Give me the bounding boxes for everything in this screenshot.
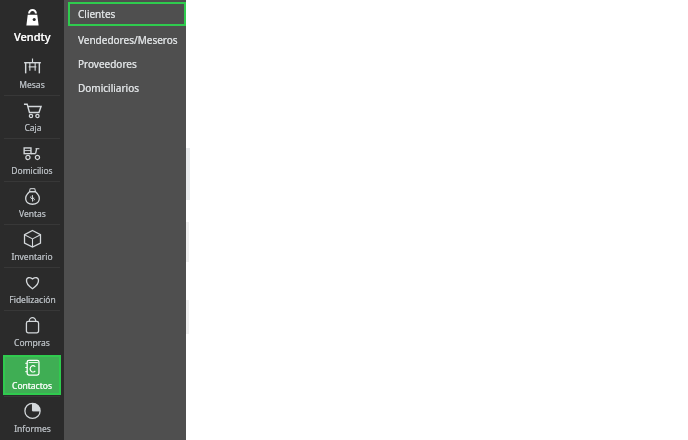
staticText: Domicilios [11, 165, 53, 177]
staticText: Vendty [14, 29, 51, 44]
staticText: Caja [24, 122, 42, 134]
staticText: Compras [14, 337, 50, 349]
button[interactable]: Contactos [3, 355, 61, 395]
button[interactable]: Fidelización [0, 267, 64, 310]
button[interactable]: Mesas [0, 52, 64, 95]
staticText: Vendedores/Meseros [78, 33, 178, 47]
staticText: Clientes [78, 7, 116, 21]
staticText: Ventas [19, 208, 46, 220]
staticText: Domiciliarios [78, 81, 139, 95]
button[interactable]: Clientes [68, 2, 186, 26]
button[interactable]: Domicilios [0, 138, 64, 181]
button[interactable]: Informes [0, 396, 64, 439]
staticText: Proveedores [78, 57, 137, 71]
staticText: Mesas [19, 79, 45, 91]
staticText: Contactos [12, 380, 52, 392]
button[interactable]: Domiciliarios [68, 76, 186, 100]
button[interactable]: Vendedores/Meseros [68, 28, 186, 52]
staticText: Fidelización [9, 294, 56, 306]
button[interactable]: Inventario [0, 224, 64, 267]
button[interactable]: Vendty [0, 0, 64, 52]
button[interactable]: Proveedores [68, 52, 186, 76]
staticText: Informes [14, 423, 51, 435]
staticText: Inventario [11, 251, 53, 263]
button[interactable]: Caja [0, 95, 64, 138]
button[interactable]: Ventas [0, 181, 64, 224]
button[interactable]: Compras [0, 310, 64, 353]
